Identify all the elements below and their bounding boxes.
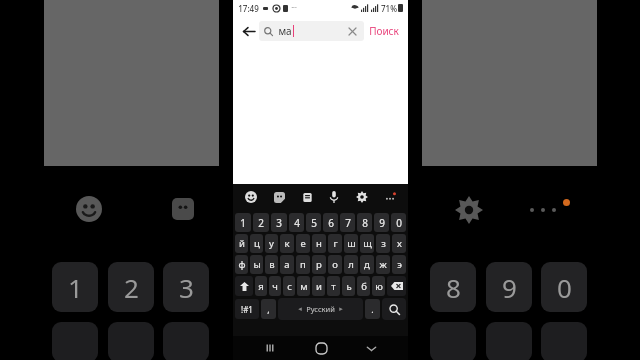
staticText: 8 xyxy=(446,270,461,305)
staticText: у xyxy=(269,237,274,250)
button[interactable]: п xyxy=(296,255,310,274)
button[interactable]: ш xyxy=(344,234,358,253)
button[interactable]: Emoji xyxy=(241,187,261,207)
button[interactable]: Stickers xyxy=(269,187,289,207)
button[interactable]: р xyxy=(312,255,326,274)
button[interactable]: 3 xyxy=(271,213,287,232)
button[interactable]: е xyxy=(296,234,310,253)
staticText: 3 xyxy=(179,270,194,305)
button[interactable]: 9 xyxy=(374,213,389,232)
staticText: ч xyxy=(272,280,278,293)
staticText: я xyxy=(258,280,264,293)
button[interactable]: б xyxy=(357,276,370,296)
button[interactable]: 5 xyxy=(306,213,321,232)
button[interactable]: м xyxy=(297,276,310,296)
button[interactable]: т xyxy=(327,276,340,296)
button[interactable]: Hide keyboard xyxy=(358,336,384,360)
button[interactable]: 2 xyxy=(253,213,269,232)
button[interactable]: н xyxy=(312,234,326,253)
button[interactable]: Keyboard settings xyxy=(352,187,372,207)
button[interactable]: и xyxy=(312,276,325,296)
button[interactable]: ж xyxy=(376,255,390,274)
staticText: и xyxy=(316,280,322,293)
button[interactable]: й xyxy=(235,234,248,253)
staticText: ф xyxy=(238,258,246,271)
staticText: 2 xyxy=(124,270,139,305)
button[interactable] xyxy=(235,276,253,296)
staticText: Русский xyxy=(306,304,335,314)
button[interactable]: з xyxy=(376,234,390,253)
button[interactable]: Clipboard xyxy=(297,187,317,207)
button[interactable]: к xyxy=(280,234,294,253)
button[interactable]: 1 xyxy=(235,213,251,232)
button[interactable]: 0 xyxy=(391,213,406,232)
button[interactable]: ма xyxy=(259,21,364,41)
button[interactable]: я xyxy=(255,276,267,296)
staticText: с xyxy=(287,280,292,293)
staticText: 8 xyxy=(362,216,368,230)
button[interactable]: 8 xyxy=(357,213,372,232)
button[interactable]: , xyxy=(261,299,276,319)
staticText: 4 xyxy=(294,216,300,230)
staticText: з xyxy=(381,237,386,250)
staticText: ю xyxy=(375,280,383,293)
button[interactable]: Recents xyxy=(257,336,283,360)
button[interactable]: . xyxy=(365,299,380,319)
button[interactable]: с xyxy=(283,276,295,296)
button[interactable]: !#1 xyxy=(235,299,259,319)
staticText: 9 xyxy=(379,216,385,230)
staticText: ▸ xyxy=(339,305,343,313)
button[interactable]: х xyxy=(392,234,406,253)
button[interactable]: 7 xyxy=(340,213,355,232)
staticText: 71% xyxy=(381,3,397,14)
staticText: , xyxy=(267,303,270,315)
staticText: 1 xyxy=(240,216,246,230)
button[interactable]: ю xyxy=(372,276,385,296)
staticText: э xyxy=(397,258,402,271)
button[interactable]: 4 xyxy=(289,213,304,232)
staticText: н xyxy=(316,237,322,250)
button[interactable]: ы xyxy=(250,255,263,274)
staticText: 1 xyxy=(68,270,83,305)
button[interactable]: у xyxy=(265,234,278,253)
button[interactable]: о xyxy=(328,255,342,274)
button[interactable]: More options xyxy=(380,187,400,207)
button[interactable]: щ xyxy=(360,234,374,253)
button[interactable]: Поиск xyxy=(364,19,404,43)
staticText: д xyxy=(364,258,370,271)
button[interactable]: 6 xyxy=(323,213,338,232)
button[interactable]: Voice input xyxy=(324,187,344,207)
staticText: р xyxy=(316,258,322,271)
staticText: б xyxy=(361,280,367,293)
button[interactable]: Search xyxy=(382,298,406,320)
staticText: щ xyxy=(363,237,372,250)
button[interactable]: Back xyxy=(237,20,259,42)
staticText: ж xyxy=(379,258,387,271)
staticText: о xyxy=(332,258,338,271)
staticText: !#1 xyxy=(241,304,253,315)
button[interactable]: ч xyxy=(269,276,281,296)
button[interactable]: г xyxy=(328,234,342,253)
button[interactable]: в xyxy=(265,255,278,274)
button[interactable]: д xyxy=(360,255,374,274)
staticText: й xyxy=(239,237,245,250)
staticText: 2 xyxy=(258,216,264,230)
button[interactable]: Home xyxy=(308,336,334,360)
button[interactable]: л xyxy=(344,255,358,274)
button[interactable]: Clear xyxy=(345,24,359,38)
button[interactable]: ◂ xyxy=(278,298,363,320)
button[interactable]: а xyxy=(280,255,294,274)
staticText: в xyxy=(269,258,275,271)
staticText: Поиск xyxy=(369,24,399,38)
staticText: е xyxy=(300,237,306,250)
button[interactable]: ь xyxy=(342,276,355,296)
button[interactable]: ф xyxy=(235,255,248,274)
staticText: п xyxy=(300,258,306,271)
staticText: 0 xyxy=(557,270,572,305)
staticText: х xyxy=(397,237,402,250)
staticText: 9 xyxy=(502,270,517,305)
staticText: ш xyxy=(347,237,356,250)
button[interactable]: э xyxy=(392,255,406,274)
button[interactable]: ц xyxy=(250,234,263,253)
button[interactable] xyxy=(387,276,406,296)
